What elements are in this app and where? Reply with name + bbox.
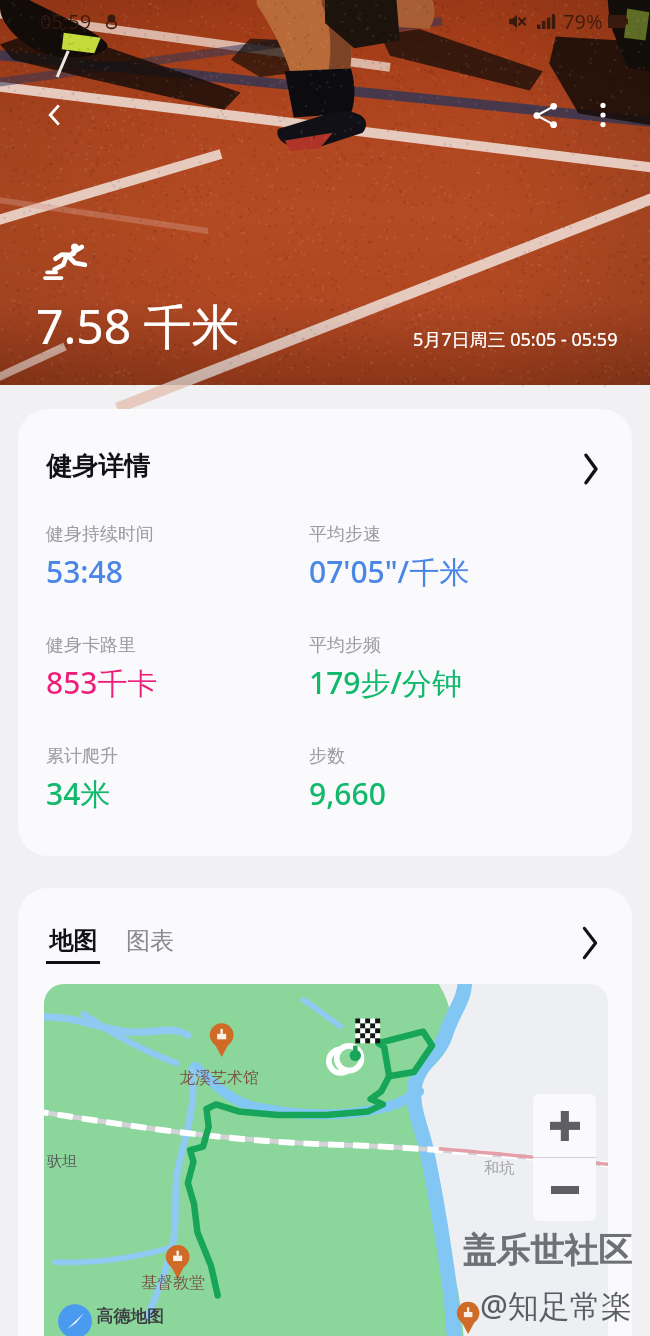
staticText: 高德地图 <box>96 1306 164 1327</box>
staticText: 盖乐世社区 <box>462 1229 632 1272</box>
button[interactable]: Open map details <box>580 926 600 960</box>
staticText: 9,660 <box>309 773 386 814</box>
button[interactable]: More options <box>580 92 626 138</box>
staticText: 179步/分钟 <box>309 662 463 703</box>
staticText: 平均步频 <box>309 634 381 657</box>
button[interactable]: Share <box>522 92 568 138</box>
button[interactable]: Back <box>32 92 78 138</box>
staticText: 07'05"/千米 <box>309 551 470 592</box>
staticText: 34米 <box>46 773 111 814</box>
staticText: 累计爬升 <box>46 745 118 768</box>
button[interactable]: 龙溪艺术馆 <box>44 984 608 1336</box>
button[interactable]: 图表 <box>126 926 174 956</box>
button[interactable]: 健身详情 <box>18 409 632 523</box>
staticText: 驮坦 <box>47 1152 77 1171</box>
button[interactable]: 地图 <box>46 926 100 964</box>
staticText: 基督教堂 <box>141 1273 205 1293</box>
staticText: 53:48 <box>46 551 123 592</box>
staticText: 健身卡路里 <box>46 634 136 657</box>
staticText: 和坑 <box>484 1159 514 1178</box>
staticText: 7.58 千米 <box>36 293 240 359</box>
staticText: 图表 <box>126 926 174 956</box>
staticText: @知足常楽 <box>480 1284 632 1326</box>
button[interactable]: Zoom out <box>533 1158 596 1221</box>
staticText: 05:59 <box>40 8 92 35</box>
staticText: 地图 <box>49 926 97 956</box>
staticText: 健身详情 <box>46 450 150 483</box>
staticText: 79% <box>563 8 603 35</box>
staticText: 5月7日周三 05:05 - 05:59 <box>413 327 618 352</box>
staticText: 步数 <box>309 745 345 768</box>
staticText: 龙溪艺术馆 <box>179 1068 259 1088</box>
button[interactable]: Zoom in <box>533 1094 596 1157</box>
staticText: 853千卡 <box>46 662 158 703</box>
staticText: 平均步速 <box>309 523 381 546</box>
staticText: 健身持续时间 <box>46 523 154 546</box>
